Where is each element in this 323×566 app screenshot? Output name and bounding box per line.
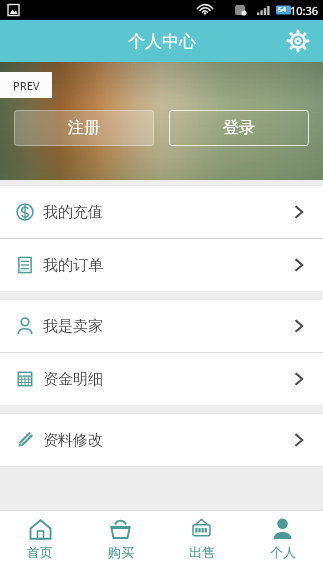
button[interactable]: 出售: [161, 511, 242, 566]
button[interactable]: PREV: [0, 72, 52, 98]
button[interactable]: 首页: [0, 511, 80, 566]
button[interactable]: 我的充值: [0, 186, 323, 238]
button[interactable]: 我是卖家: [0, 300, 323, 352]
staticText: 我的充值: [43, 203, 103, 222]
button[interactable]: Settings: [281, 24, 315, 58]
staticText: 54: [278, 5, 287, 15]
button[interactable]: 购买: [80, 511, 161, 566]
staticText: 个人中心: [128, 31, 196, 52]
staticText: 个人: [270, 544, 296, 560]
staticText: 登录: [223, 118, 255, 138]
staticText: 资金明细: [43, 370, 103, 389]
staticText: 我是卖家: [43, 317, 103, 336]
staticText: 出售: [189, 544, 215, 560]
button[interactable]: 登录: [169, 110, 309, 146]
button[interactable]: 资金明细: [0, 353, 323, 405]
button[interactable]: 资料修改: [0, 414, 323, 466]
staticText: 我的订单: [43, 256, 103, 275]
button[interactable]: 个人: [242, 511, 323, 566]
staticText: 注册: [68, 118, 100, 138]
button[interactable]: 我的订单: [0, 239, 323, 291]
button[interactable]: 注册: [14, 110, 154, 146]
staticText: PREV: [13, 78, 40, 93]
staticText: 购买: [108, 544, 134, 560]
staticText: 10:36: [290, 3, 319, 18]
staticText: 资料修改: [43, 431, 103, 450]
staticText: 首页: [27, 544, 53, 560]
